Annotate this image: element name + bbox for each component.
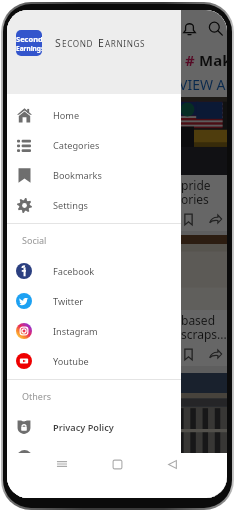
- staticText: Social: [22, 234, 47, 246]
- button[interactable]: Privacy Policy: [7, 412, 181, 442]
- staticText: Privacy Policy: [53, 421, 114, 434]
- staticText: pride ories of...: [181, 177, 227, 207]
- button[interactable]: Instagram: [7, 316, 181, 346]
- button[interactable]: Home: [7, 100, 181, 130]
- button[interactable]: Home: [106, 453, 128, 475]
- staticText: Earnings: [16, 44, 42, 53]
- staticText: Home: [53, 109, 80, 122]
- staticText: Twitter: [53, 295, 84, 308]
- staticText: based scraps...: [181, 312, 227, 342]
- button[interactable]: Categories: [7, 130, 181, 160]
- staticText: Make Money: [199, 50, 227, 70]
- staticText: Bookmarks: [53, 169, 102, 182]
- staticText: Others: [22, 390, 51, 402]
- staticText: E: [98, 36, 105, 50]
- staticText: S: [55, 36, 62, 50]
- staticText: Facebook: [53, 265, 95, 278]
- staticText: Settings: [53, 199, 88, 212]
- button[interactable]: Youtube: [7, 346, 181, 376]
- staticText: ECOND: [62, 38, 94, 49]
- button[interactable]: Twitter: [7, 286, 181, 316]
- staticText: ARNINGS: [105, 38, 146, 49]
- button[interactable]: Notifications: [179, 18, 199, 38]
- staticText: Second: [16, 34, 42, 44]
- button[interactable]: Settings: [7, 190, 181, 220]
- staticText: Instagram: [53, 325, 98, 338]
- button[interactable]: Search: [205, 18, 225, 38]
- button[interactable]: Bookmarks: [7, 160, 181, 190]
- staticText: #: [185, 50, 195, 70]
- button[interactable]: Facebook: [7, 256, 181, 286]
- staticText: VIEW ALL: [179, 75, 227, 94]
- button[interactable]: About Us: [7, 442, 181, 472]
- button[interactable]: Recents: [51, 453, 73, 475]
- staticText: Youtube: [53, 355, 89, 368]
- staticText: Categories: [53, 139, 100, 152]
- button[interactable]: Back: [161, 453, 183, 475]
- staticText: About Us: [53, 451, 93, 464]
